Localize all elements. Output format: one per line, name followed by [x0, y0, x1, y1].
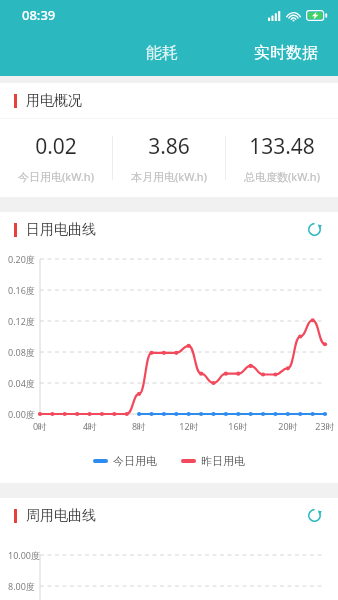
staticText: 08:39 — [22, 6, 56, 24]
staticText: 0.04度 — [8, 377, 35, 389]
staticText: 总电度数(kW.h) — [244, 169, 320, 184]
staticText: 4时 — [79, 420, 101, 432]
staticText: 今日用电(kW.h) — [18, 169, 94, 184]
staticText: 16时 — [227, 420, 249, 432]
button[interactable]: 能耗 — [140, 37, 184, 69]
staticText: 0.02 — [35, 132, 77, 161]
staticText: 用电概况 — [26, 92, 82, 110]
staticText: 本月用电(kW.h) — [131, 169, 207, 184]
staticText: 8.00度 — [8, 580, 35, 592]
staticText: 能耗 — [146, 43, 178, 63]
staticText: 0.12度 — [8, 315, 35, 327]
staticText: 20时 — [277, 420, 299, 432]
button[interactable]: 0.02 — [0, 119, 112, 197]
staticText: 0.20度 — [8, 253, 35, 265]
staticText: 0.16度 — [8, 284, 35, 296]
staticText: 23时 — [314, 420, 336, 432]
staticText: 今日用电 — [113, 454, 157, 468]
button[interactable]: Refresh — [304, 219, 325, 240]
staticText: 日用电曲线 — [26, 221, 96, 239]
staticText: 昨日用电 — [201, 454, 245, 468]
button[interactable]: 133.48 — [226, 119, 338, 197]
button[interactable]: Refresh — [304, 505, 325, 526]
button[interactable]: 今日用电 — [91, 452, 159, 470]
staticText: 0.08度 — [8, 346, 35, 358]
staticText: 周用电曲线 — [26, 507, 96, 525]
staticText: 0.00度 — [8, 408, 35, 420]
staticText: 3.86 — [148, 132, 190, 161]
button[interactable]: 昨日用电 — [179, 452, 247, 470]
staticText: 12时 — [178, 420, 200, 432]
staticText: 0时 — [29, 420, 51, 432]
staticText: 8时 — [128, 420, 150, 432]
staticText: 10.00度 — [8, 549, 41, 561]
staticText: 实时数据 — [254, 43, 318, 63]
staticText: 133.48 — [249, 132, 315, 161]
button[interactable]: 3.86 — [113, 119, 225, 197]
button[interactable]: 实时数据 — [248, 37, 324, 69]
